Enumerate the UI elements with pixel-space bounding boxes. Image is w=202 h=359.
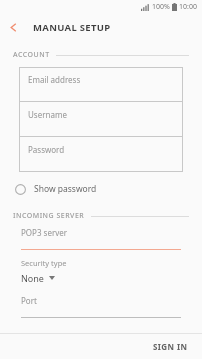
button[interactable]: POP3 server bbox=[0, 227, 202, 250]
button[interactable]: Back bbox=[0, 14, 26, 40]
button[interactable]: Port bbox=[0, 295, 202, 318]
button[interactable]: Password bbox=[19, 137, 183, 172]
staticText: POP3 server bbox=[21, 227, 68, 238]
button[interactable]: Show password bbox=[0, 177, 202, 201]
staticText: SIGN IN bbox=[153, 341, 188, 352]
button[interactable]: Username bbox=[19, 102, 183, 137]
staticText: INCOMING SERVER bbox=[13, 211, 85, 221]
staticText: ACCOUNT bbox=[13, 50, 50, 60]
staticText: None bbox=[21, 272, 44, 284]
staticText: Email address bbox=[28, 74, 81, 85]
staticText: Password bbox=[28, 144, 65, 155]
button[interactable]: Email address bbox=[19, 67, 183, 102]
staticText: Username bbox=[28, 109, 67, 120]
staticText: Show password bbox=[34, 183, 97, 195]
staticText: 10:00 bbox=[179, 2, 197, 12]
staticText: Security type bbox=[21, 258, 67, 268]
staticText: MANUAL SETUP bbox=[33, 21, 111, 34]
staticText: 100% bbox=[152, 2, 170, 12]
button[interactable]: Security type bbox=[0, 258, 202, 284]
staticText: Port bbox=[21, 295, 37, 306]
button[interactable]: SIGN IN bbox=[139, 336, 202, 357]
